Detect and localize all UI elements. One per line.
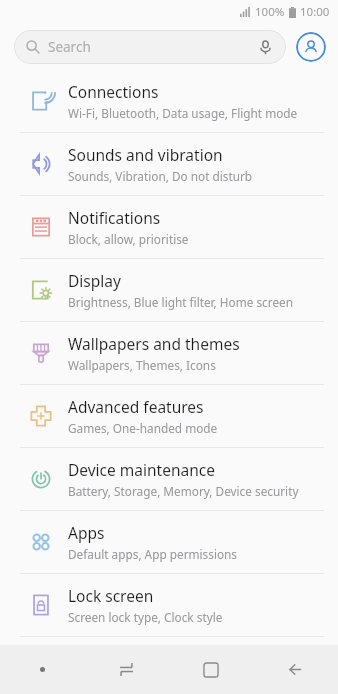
staticText: 10:00	[300, 4, 330, 20]
staticText: Games, One-handed mode	[68, 420, 218, 436]
button[interactable]: Connections	[0, 70, 338, 132]
button[interactable]: Advanced features	[0, 385, 338, 447]
button[interactable]: Wallpapers and themes	[0, 322, 338, 384]
button[interactable]: Account	[296, 32, 326, 62]
button[interactable]: Apps	[0, 511, 338, 573]
button[interactable]: Device maintenance	[0, 448, 338, 510]
staticText: Search	[48, 38, 91, 56]
staticText: Screen lock type, Clock style	[68, 609, 223, 625]
staticText: Block, allow, prioritise	[68, 231, 189, 247]
staticText: Wallpapers, Themes, Icons	[68, 357, 216, 373]
button[interactable]: Lock screen	[0, 574, 338, 636]
staticText: Connections	[68, 81, 159, 102]
staticText: Brightness, Blue light filter, Home scre…	[68, 294, 293, 310]
staticText: Apps	[68, 522, 105, 543]
staticText: Sounds and vibration	[68, 144, 223, 165]
staticText: Sounds, Vibration, Do not disturb	[68, 168, 253, 184]
staticText: 100%	[255, 4, 285, 20]
staticText: Device maintenance	[68, 459, 215, 480]
staticText: Default apps, App permissions	[68, 546, 238, 562]
button[interactable]: Notifications	[0, 196, 338, 258]
staticText: Wi-Fi, Bluetooth, Data usage, Flight mod…	[68, 105, 298, 121]
button[interactable]: Display	[0, 259, 338, 321]
staticText: Wallpapers and themes	[68, 333, 240, 354]
staticText: Advanced features	[68, 396, 204, 417]
staticText: Notifications	[68, 207, 161, 228]
button[interactable]: Menu	[0, 645, 84, 694]
staticText: Battery, Storage, Memory, Device securit…	[68, 483, 299, 499]
button[interactable]: Recents	[84, 645, 168, 694]
button[interactable]: Sounds and vibration	[0, 133, 338, 195]
staticText: Lock screen	[68, 585, 154, 606]
button[interactable]: Home	[168, 645, 253, 694]
staticText: Display	[68, 270, 121, 291]
button[interactable]: Back	[253, 645, 338, 694]
button[interactable]: Voice search	[254, 36, 276, 58]
button[interactable]: Search	[14, 30, 286, 64]
